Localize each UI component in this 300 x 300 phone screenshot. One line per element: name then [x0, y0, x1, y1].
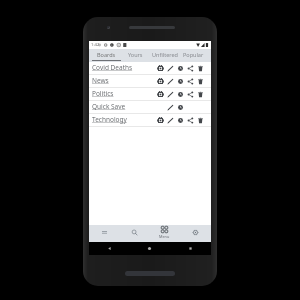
button[interactable]: Screenshot: [155, 75, 165, 88]
button[interactable]: Search: [119, 225, 149, 242]
button[interactable]: Back: [89, 242, 129, 255]
staticText: Covid Deaths: [92, 63, 133, 72]
button[interactable]: History: [175, 75, 185, 88]
button[interactable]: Menu: [149, 225, 180, 242]
button[interactable]: Quick Save: [89, 101, 211, 114]
staticText: Menu: [159, 234, 170, 239]
button[interactable]: Edit: [165, 75, 175, 88]
button[interactable]: Edit: [165, 114, 175, 127]
button[interactable]: History: [175, 114, 185, 127]
button[interactable]: Share: [185, 114, 195, 127]
button[interactable]: Share: [185, 62, 195, 75]
button[interactable]: Delete: [195, 75, 205, 88]
button[interactable]: Edit: [165, 88, 175, 101]
button[interactable]: Feed: [89, 225, 119, 242]
button[interactable]: Screenshot: [155, 88, 165, 101]
button[interactable]: History: [175, 88, 185, 101]
button[interactable]: Boards: [92, 49, 121, 62]
button[interactable]: Delete: [195, 62, 205, 75]
staticText: 1:42: [91, 42, 100, 48]
button[interactable]: Home: [129, 242, 170, 255]
staticText: Unfiltered: [152, 51, 178, 58]
button[interactable]: Recents: [170, 242, 211, 255]
button[interactable]: Covid Deaths: [89, 62, 211, 75]
button[interactable]: Delete: [195, 114, 205, 127]
button[interactable]: Screenshot: [155, 62, 165, 75]
button[interactable]: Popular: [179, 49, 208, 62]
button[interactable]: Unfiltered: [150, 49, 179, 62]
staticText: Popular: [183, 51, 204, 58]
button[interactable]: Yours: [121, 49, 150, 62]
staticText: Technology: [92, 115, 127, 124]
staticText: Politics: [92, 89, 114, 98]
staticText: News: [92, 76, 109, 85]
button[interactable]: Politics: [89, 88, 211, 101]
button[interactable]: History: [175, 101, 185, 114]
button[interactable]: Screenshot: [155, 114, 165, 127]
button[interactable]: Settings: [180, 225, 211, 242]
button[interactable]: Edit: [165, 62, 175, 75]
button[interactable]: History: [175, 62, 185, 75]
staticText: Boards: [97, 51, 116, 58]
button[interactable]: Edit: [165, 101, 175, 114]
button[interactable]: Share: [185, 75, 195, 88]
staticText: Quick Save: [92, 102, 126, 111]
button[interactable]: Share: [185, 88, 195, 101]
button[interactable]: Delete: [195, 88, 205, 101]
staticText: Yours: [128, 51, 143, 58]
button[interactable]: News: [89, 75, 211, 88]
button[interactable]: Technology: [89, 114, 211, 127]
